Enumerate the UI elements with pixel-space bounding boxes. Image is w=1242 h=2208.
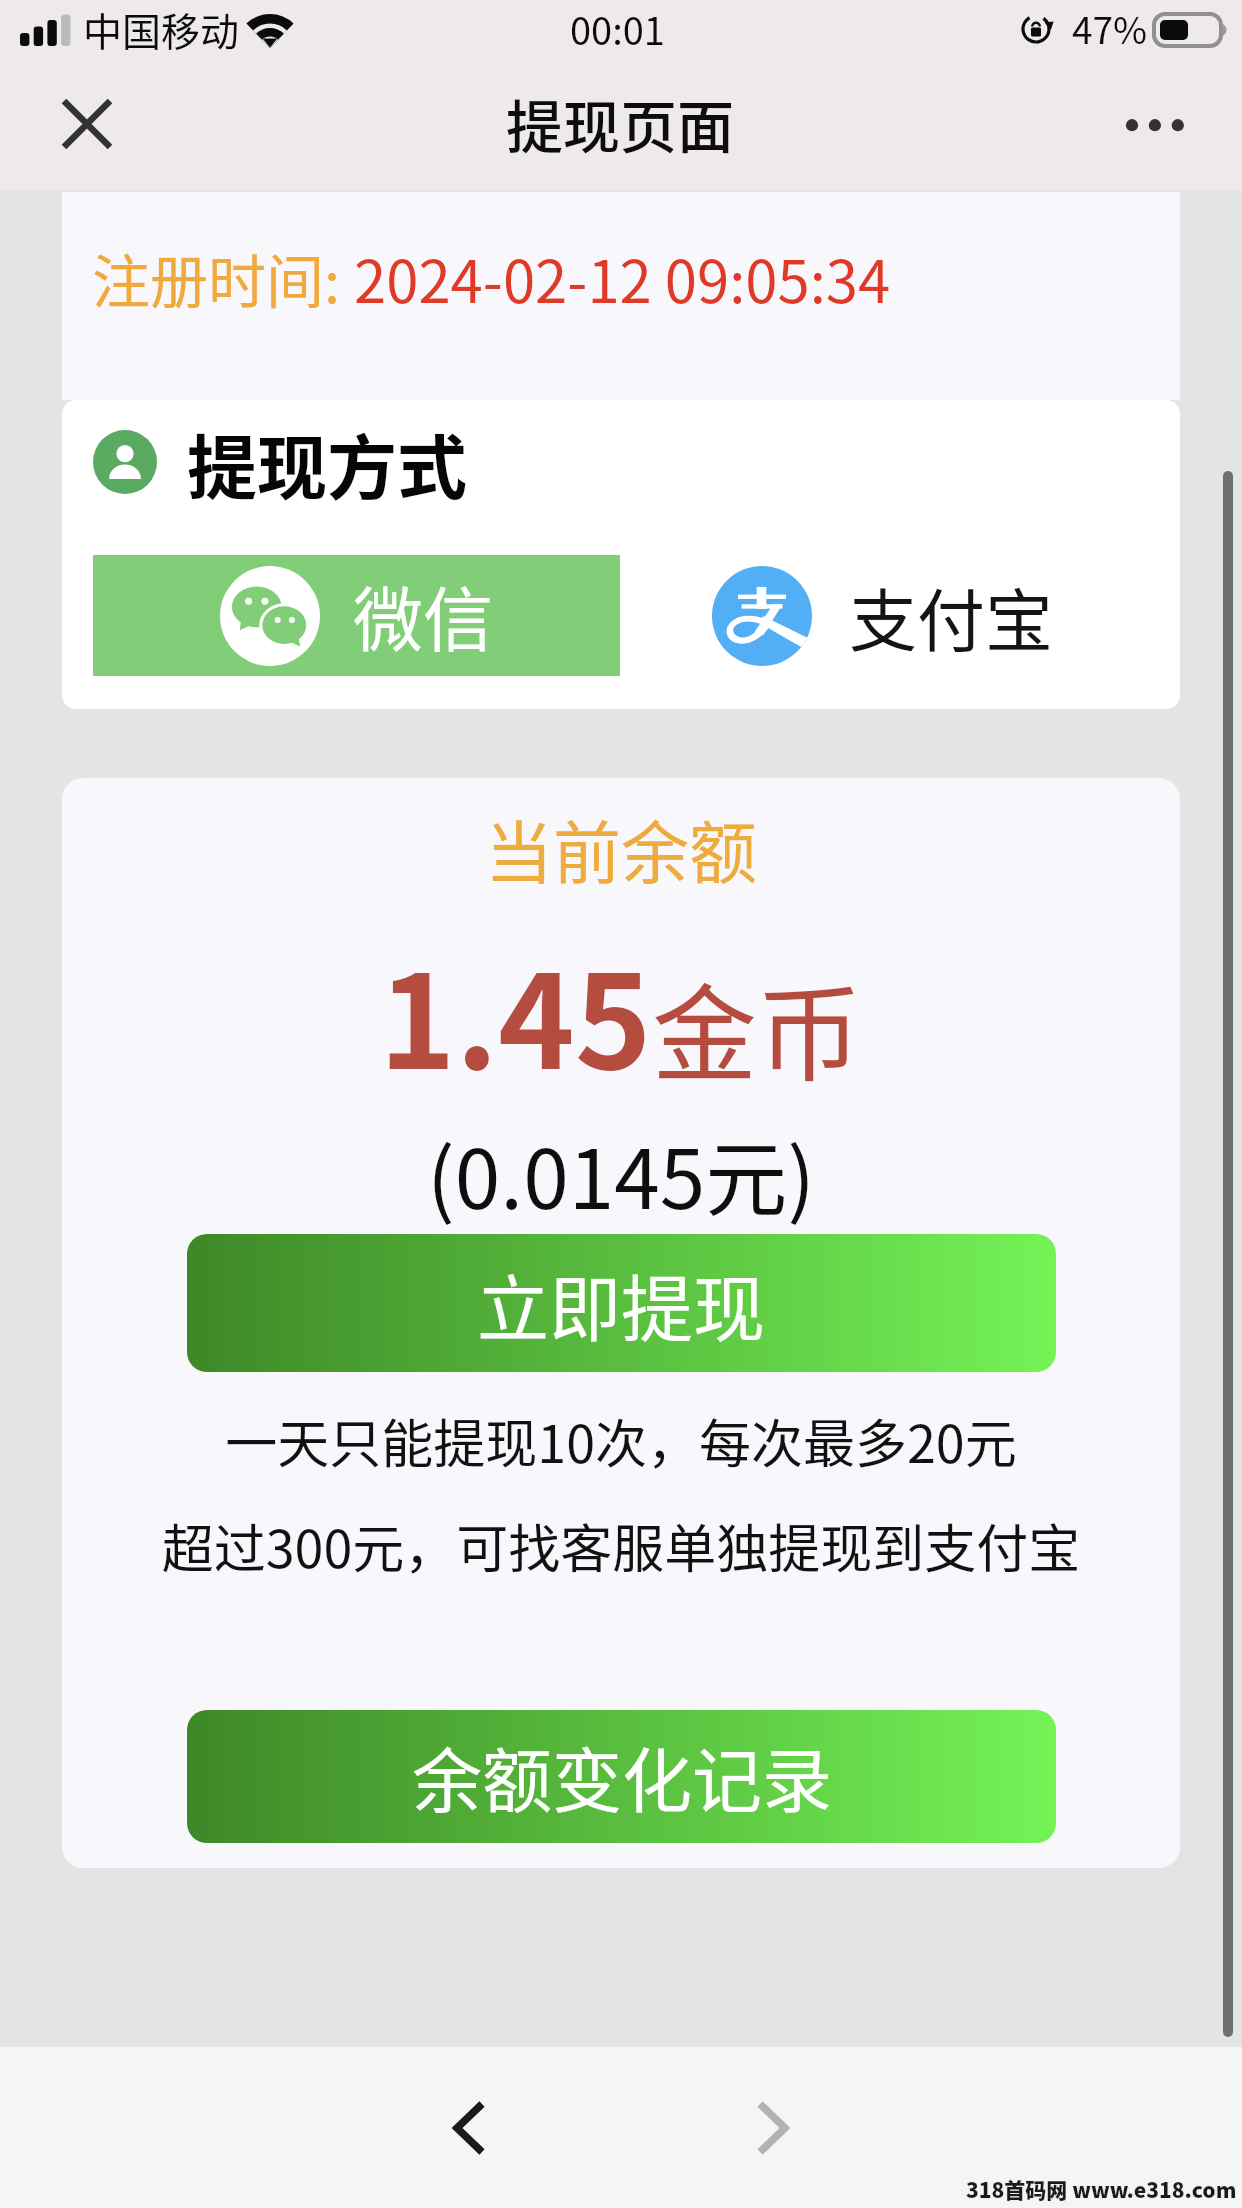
button[interactable]: 微信: [93, 555, 620, 676]
staticText: 微信: [353, 565, 493, 666]
staticText: 超过300元，可找客服单独提现到支付宝: [62, 1508, 1180, 1583]
staticText: 当前余额: [62, 799, 1180, 897]
staticText: 提现方式: [187, 413, 467, 514]
staticText: 立即提现: [477, 1251, 766, 1355]
staticText: 318首码网 www.e318.com: [965, 2175, 1236, 2205]
staticText: 提现页面: [506, 82, 734, 165]
staticText: 318首码网 www.e318.com: [966, 2174, 1237, 2204]
button[interactable]: 支付宝: [712, 555, 1054, 676]
staticText: 00:01: [570, 1, 665, 56]
button[interactable]: 更多: [1106, 95, 1206, 155]
staticText: 一天只能提现10次，每次最多20元: [62, 1403, 1180, 1478]
staticText: 318首码网 www.e318.com: [967, 2174, 1238, 2204]
staticText: 中国移动: [83, 1, 240, 57]
staticText: 318首码网 www.e318.com: [966, 2173, 1237, 2203]
staticText: 318首码网 www.e318.com: [966, 2175, 1237, 2205]
staticText: 2024-02-12 09:05:34: [354, 236, 891, 320]
button[interactable]: 关闭: [47, 84, 127, 164]
staticText: 1.45: [379, 918, 652, 1106]
button[interactable]: 立即提现: [187, 1234, 1056, 1372]
staticText: 318首码网 www.e318.com: [967, 2175, 1238, 2205]
staticText: 47%: [1072, 1, 1148, 55]
staticText: 余额变化记录: [412, 1726, 832, 1827]
staticText: 318首码网 www.e318.com: [965, 2174, 1236, 2204]
staticText: 318首码网 www.e318.com: [967, 2173, 1238, 2203]
staticText: 金币: [652, 950, 863, 1102]
staticText: 注册时间:: [92, 236, 354, 320]
staticText: (0.0145元): [62, 1114, 1180, 1233]
button[interactable]: 余额变化记录: [187, 1710, 1056, 1843]
staticText: 318首码网 www.e318.com: [965, 2173, 1236, 2203]
button[interactable]: 前进: [722, 2076, 822, 2176]
button[interactable]: 后退: [419, 2076, 519, 2176]
staticText: 支付宝: [849, 567, 1054, 665]
